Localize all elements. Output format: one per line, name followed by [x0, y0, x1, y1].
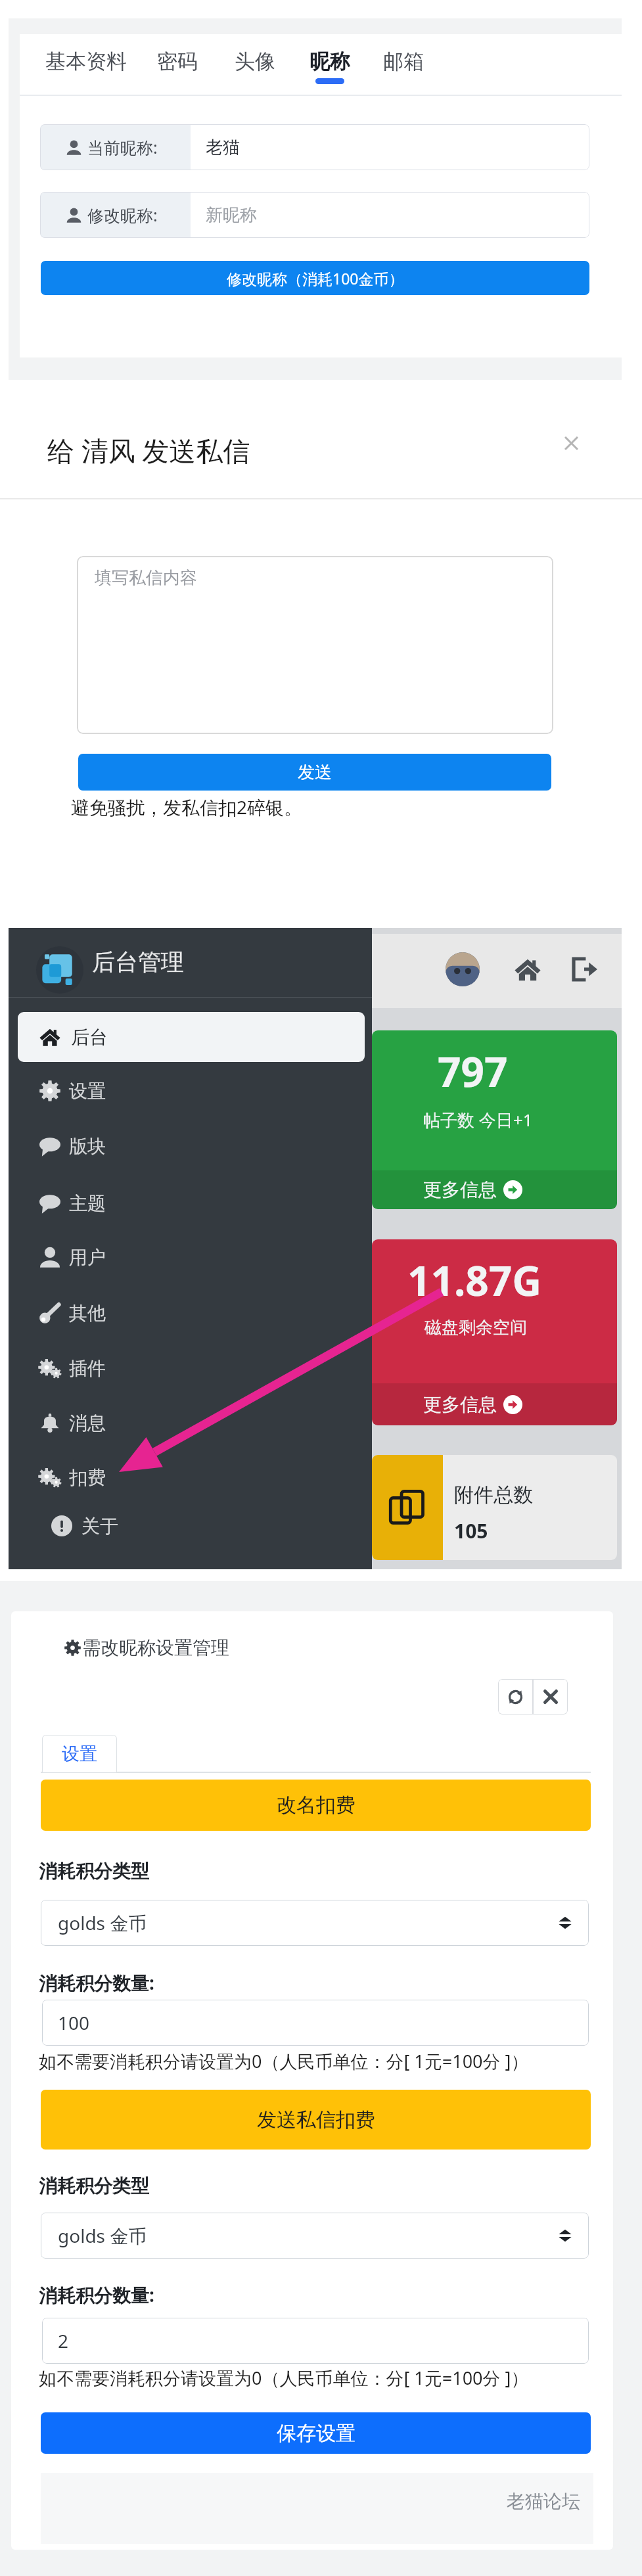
- button[interactable]: 设置: [9, 1063, 372, 1118]
- staticText: 磁盘剩余空间: [424, 1317, 527, 1339]
- staticText: golds 金币: [58, 1910, 147, 1935]
- button[interactable]: golds 金币: [41, 2213, 589, 2259]
- staticText: 新昵称: [206, 204, 257, 226]
- button[interactable]: 退出: [569, 954, 599, 984]
- staticText: 发送: [298, 762, 332, 783]
- staticText: 797: [438, 1044, 508, 1099]
- button[interactable]: 用户头像: [446, 952, 480, 986]
- staticText: 密码: [157, 49, 198, 74]
- button[interactable]: 昵称: [310, 49, 350, 84]
- button[interactable]: 关闭: [533, 1679, 568, 1714]
- staticText: 帖子数 今日+1: [423, 1108, 533, 1132]
- staticText: 修改昵称（消耗100金币）: [227, 268, 404, 288]
- staticText: 用户: [69, 1246, 106, 1269]
- button[interactable]: 邮箱: [383, 49, 424, 74]
- button[interactable]: 版块: [9, 1118, 372, 1174]
- button[interactable]: 设置: [42, 1735, 117, 1773]
- staticText: 100: [58, 2010, 90, 2035]
- staticText: 设置: [69, 1080, 106, 1103]
- staticText: 消耗积分类型: [39, 1860, 149, 1883]
- staticText: golds 金币: [58, 2223, 147, 2248]
- button[interactable]: 发送私信扣费: [41, 2090, 591, 2150]
- staticText: 更多信息: [423, 1393, 497, 1416]
- button[interactable]: 插件: [9, 1341, 372, 1396]
- staticText: 后台管理: [92, 948, 184, 977]
- button[interactable]: golds 金币: [41, 1900, 589, 1946]
- button[interactable]: 保存设置: [41, 2412, 591, 2454]
- staticText: 其他: [69, 1302, 106, 1325]
- staticText: 版块: [69, 1135, 106, 1158]
- staticText: 消耗积分数量:: [39, 2282, 154, 2307]
- staticText: 需改昵称设置管理: [82, 1636, 229, 1659]
- button[interactable]: 扣费: [9, 1450, 372, 1505]
- staticText: 设置: [62, 1743, 97, 1765]
- button[interactable]: 修改昵称（消耗100金币）: [41, 261, 589, 295]
- staticText: 给 清风 发送私信: [47, 432, 250, 469]
- staticText: 后台: [71, 1026, 108, 1049]
- staticText: 主题: [69, 1192, 106, 1215]
- button[interactable]: 填写私信内容: [77, 556, 553, 734]
- staticText: 105: [454, 1517, 488, 1544]
- button[interactable]: 首页: [513, 954, 543, 984]
- button[interactable]: 关于: [9, 1498, 372, 1553]
- button[interactable]: 消息: [9, 1395, 372, 1450]
- button[interactable]: 附件总数: [372, 1455, 617, 1560]
- button[interactable]: 改名扣费: [41, 1780, 591, 1831]
- button[interactable]: 100: [42, 2000, 589, 2046]
- staticText: 插件: [69, 1357, 106, 1380]
- staticText: 填写私信内容: [95, 567, 197, 589]
- staticText: 头像: [235, 49, 275, 74]
- button[interactable]: 用户: [9, 1230, 372, 1285]
- button[interactable]: 主题: [9, 1176, 372, 1231]
- staticText: 昵称: [310, 49, 350, 74]
- button[interactable]: 头像: [235, 49, 275, 74]
- button[interactable]: 发送: [78, 754, 551, 791]
- button[interactable]: 2: [42, 2318, 589, 2364]
- button[interactable]: 关闭: [555, 427, 587, 459]
- staticText: 如不需要消耗积分请设置为0（人民币单位：分[ 1元=100分 ]）: [39, 2049, 529, 2073]
- staticText: 附件总数: [454, 1483, 533, 1507]
- staticText: 扣费: [69, 1466, 106, 1489]
- staticText: 当前昵称:: [87, 136, 158, 158]
- button[interactable]: 后台: [18, 1012, 365, 1062]
- staticText: 邮箱: [383, 49, 424, 74]
- staticText: 基本资料: [45, 49, 127, 74]
- button[interactable]: 刷新: [498, 1679, 533, 1714]
- button[interactable]: 密码: [157, 49, 198, 74]
- button[interactable]: 11.87G: [372, 1239, 617, 1425]
- staticText: 如不需要消耗积分请设置为0（人民币单位：分[ 1元=100分 ]）: [39, 2366, 529, 2390]
- button[interactable]: 797: [372, 1030, 617, 1209]
- staticText: 消耗积分类型: [39, 2174, 149, 2197]
- staticText: 2: [58, 2328, 69, 2353]
- staticText: 消耗积分数量:: [39, 1970, 154, 1995]
- staticText: 老猫: [206, 137, 240, 158]
- staticText: 11.87G: [407, 1253, 542, 1308]
- staticText: 老猫论坛: [507, 2490, 580, 2513]
- staticText: 发送私信扣费: [257, 2107, 375, 2132]
- staticText: 改名扣费: [277, 1793, 355, 1818]
- staticText: 避免骚扰，发私信扣2碎银。: [71, 794, 303, 819]
- staticText: 修改昵称:: [87, 204, 158, 226]
- button[interactable]: 基本资料: [45, 49, 127, 74]
- staticText: 消息: [69, 1412, 106, 1435]
- button[interactable]: 其他: [9, 1285, 372, 1341]
- staticText: 关于: [81, 1515, 118, 1538]
- staticText: 保存设置: [277, 2421, 355, 2446]
- staticText: 更多信息: [423, 1178, 497, 1201]
